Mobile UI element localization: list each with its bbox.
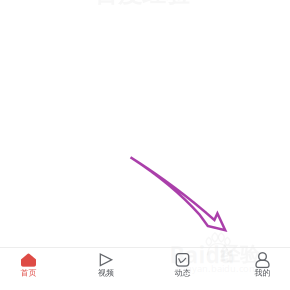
- staticText: 经验: [220, 242, 260, 267]
- staticText: 视频: [98, 268, 114, 278]
- button[interactable]: 视频: [72, 244, 140, 286]
- staticText: 百度经验: [94, 0, 190, 9]
- button[interactable]: 我的: [228, 244, 290, 286]
- button[interactable]: 首页: [0, 244, 62, 286]
- staticText: 首页: [20, 268, 36, 278]
- staticText: 我的: [254, 268, 270, 278]
- staticText: jingyan.baidu.com: [176, 262, 258, 275]
- staticText: Baidu: [169, 239, 234, 269]
- button[interactable]: 动态: [148, 244, 216, 286]
- staticText: 动态: [174, 268, 190, 278]
